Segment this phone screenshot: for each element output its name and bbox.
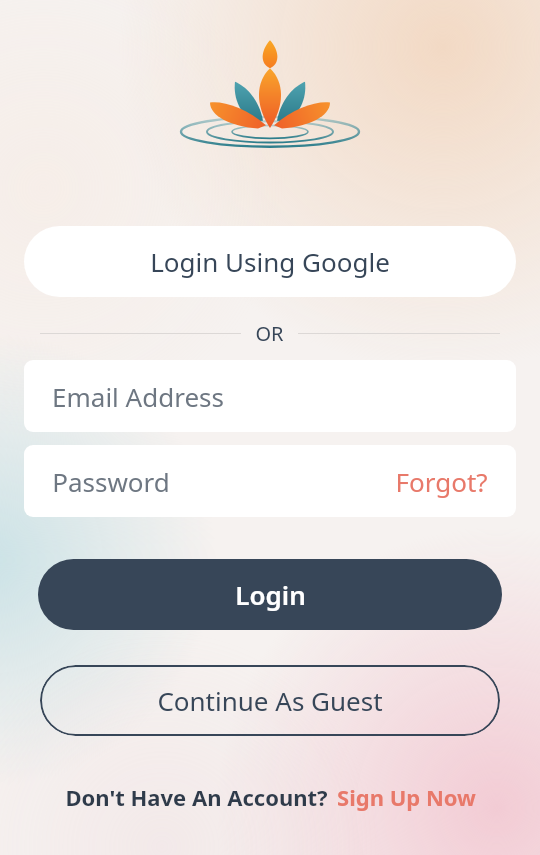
- staticText: Password: [52, 464, 170, 499]
- staticText: Login: [235, 577, 306, 612]
- staticText: Sign Up Now: [337, 782, 476, 812]
- staticText: Email Address: [52, 379, 224, 414]
- staticText: Login Using Google: [150, 244, 390, 279]
- button[interactable]: Forgot?: [387, 464, 488, 499]
- button[interactable]: Login: [38, 559, 502, 630]
- staticText: OR: [255, 320, 284, 347]
- button[interactable]: Login Using Google: [24, 226, 516, 297]
- staticText: Forgot?: [395, 464, 488, 499]
- staticText: Don't Have An Account?: [65, 782, 328, 812]
- button[interactable]: Continue As Guest: [40, 665, 500, 736]
- button[interactable]: Email Address: [24, 360, 516, 432]
- button[interactable]: Sign Up Now: [337, 782, 476, 812]
- staticText: Continue As Guest: [157, 683, 383, 718]
- button[interactable]: Password: [52, 464, 387, 499]
